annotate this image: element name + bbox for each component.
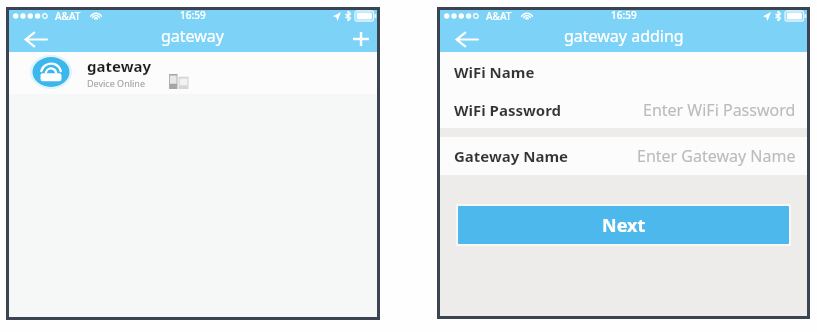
button[interactable]: Next bbox=[458, 206, 789, 244]
staticText: 16:59 bbox=[180, 8, 206, 22]
button[interactable]: Back bbox=[19, 26, 53, 52]
button[interactable]: Add bbox=[348, 26, 374, 52]
staticText: Device Online bbox=[87, 77, 145, 89]
staticText: WiFi Name bbox=[454, 62, 535, 82]
button[interactable]: Back bbox=[450, 26, 484, 52]
staticText: gateway bbox=[161, 25, 225, 47]
staticText: A&AT bbox=[486, 9, 512, 23]
button[interactable]: Gateway Name bbox=[437, 137, 810, 175]
staticText: A&AT bbox=[55, 9, 81, 23]
button[interactable]: gateway bbox=[6, 52, 380, 94]
staticText: gateway adding bbox=[564, 25, 684, 47]
staticText: Gateway Name bbox=[454, 146, 569, 166]
button[interactable]: WiFi Password bbox=[437, 91, 810, 128]
staticText: gateway bbox=[87, 56, 152, 76]
staticText: 16:59 bbox=[611, 8, 637, 22]
staticText: WiFi Password bbox=[454, 100, 562, 120]
button[interactable]: WiFi Name bbox=[437, 52, 810, 91]
staticText: Enter WiFi Password bbox=[643, 99, 796, 121]
staticText: Next bbox=[602, 213, 646, 238]
staticText: Enter Gateway Name bbox=[637, 145, 796, 167]
